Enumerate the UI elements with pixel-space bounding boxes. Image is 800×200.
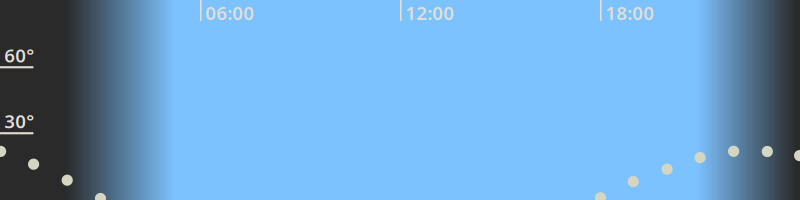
staticText: 60°: [4, 43, 34, 68]
staticText: 30°: [4, 109, 34, 133]
staticText: 06:00: [205, 0, 254, 25]
staticText: 12:00: [405, 0, 454, 25]
staticText: 18:00: [605, 0, 654, 25]
